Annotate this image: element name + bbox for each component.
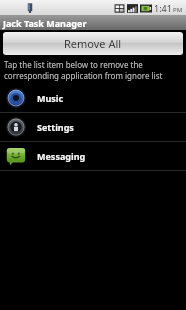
button[interactable]: Settings [0,113,186,141]
other: Music [6,88,26,108]
staticText: Tap the list item below to remove the [4,59,143,70]
staticText: corresponding application from ignore li… [4,70,163,81]
staticText: Settings [37,121,74,133]
button[interactable]: Messaging [0,142,186,170]
staticText: 1:41 [154,2,172,14]
button[interactable]: Music [0,84,186,112]
staticText: PM [173,6,183,14]
staticText: Jack Task Manager [3,17,87,29]
staticText: Music [37,92,64,104]
button[interactable]: Remove All [3,32,183,55]
other: Settings [6,117,26,137]
other: Messaging [6,146,26,166]
staticText: Messaging [37,150,86,162]
staticText: Remove All [64,36,122,51]
